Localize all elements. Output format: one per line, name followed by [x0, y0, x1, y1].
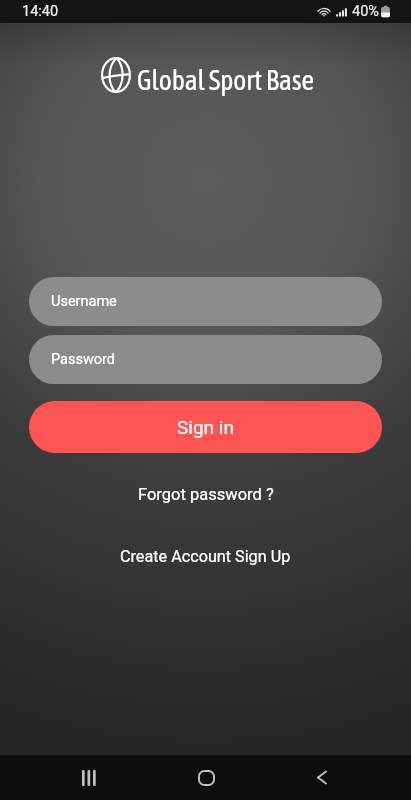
button[interactable]: Password	[29, 335, 382, 384]
staticText: 40%	[352, 3, 379, 20]
staticText: Username	[51, 293, 117, 310]
staticText: Password	[51, 351, 116, 368]
button[interactable]: Home	[179, 755, 233, 800]
button[interactable]: Back	[295, 755, 349, 800]
staticText: Sign in	[177, 416, 234, 438]
button[interactable]: Sign in	[29, 401, 382, 453]
staticText: Global Sport Base	[137, 64, 315, 96]
button[interactable]: Forgot password ?	[126, 480, 286, 509]
staticText: 14:40	[22, 3, 59, 20]
button[interactable]: Username	[29, 277, 382, 326]
button[interactable]: Recent apps	[62, 755, 116, 800]
button[interactable]: Create Account Sign Up	[108, 542, 303, 571]
